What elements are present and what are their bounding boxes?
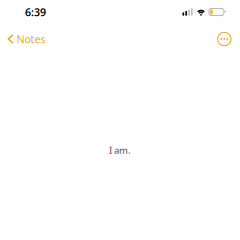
button[interactable]: I am. [0,54,240,240]
staticText: I am. [109,144,131,156]
staticText: Notes [17,32,46,46]
button[interactable]: Notes [0,24,54,54]
button[interactable]: More [210,24,239,54]
staticText: 6:39 [25,5,46,19]
